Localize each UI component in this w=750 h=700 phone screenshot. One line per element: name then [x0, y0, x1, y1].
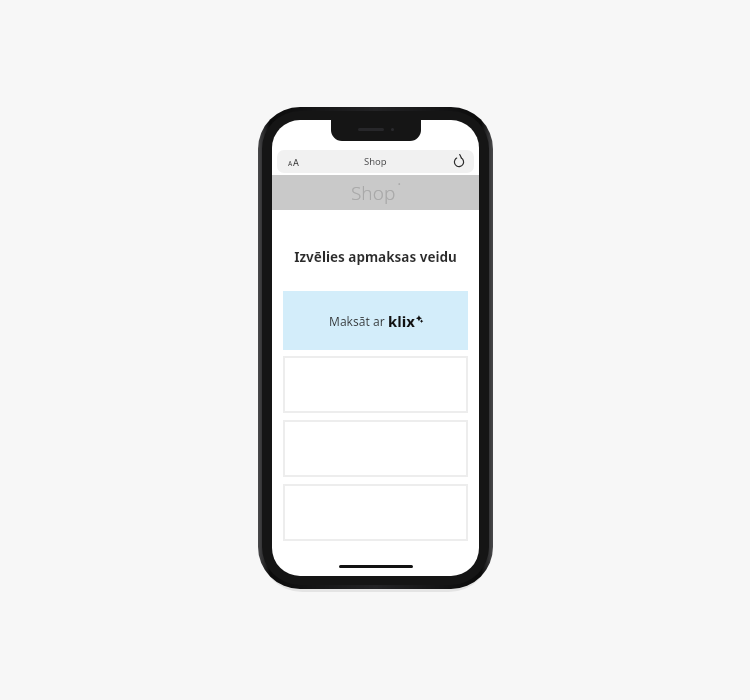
- staticText: Shop: [351, 180, 396, 206]
- staticText: Shop: [364, 155, 387, 168]
- button[interactable]: Text size options: [283, 153, 304, 171]
- staticText: A: [293, 156, 299, 168]
- staticText: Izvēlies apmaksas veidu: [272, 248, 479, 266]
- button[interactable]: Reload page: [451, 154, 467, 170]
- staticText: A: [288, 159, 293, 168]
- button[interactable]: Maksāt ar: [283, 291, 468, 350]
- staticText: klix: [388, 311, 415, 331]
- button[interactable]: Payment option: [284, 357, 467, 412]
- button[interactable]: Payment option: [284, 485, 467, 540]
- staticText: Maksāt ar: [329, 313, 388, 329]
- button[interactable]: Payment option: [284, 421, 467, 476]
- staticText: •: [398, 180, 401, 190]
